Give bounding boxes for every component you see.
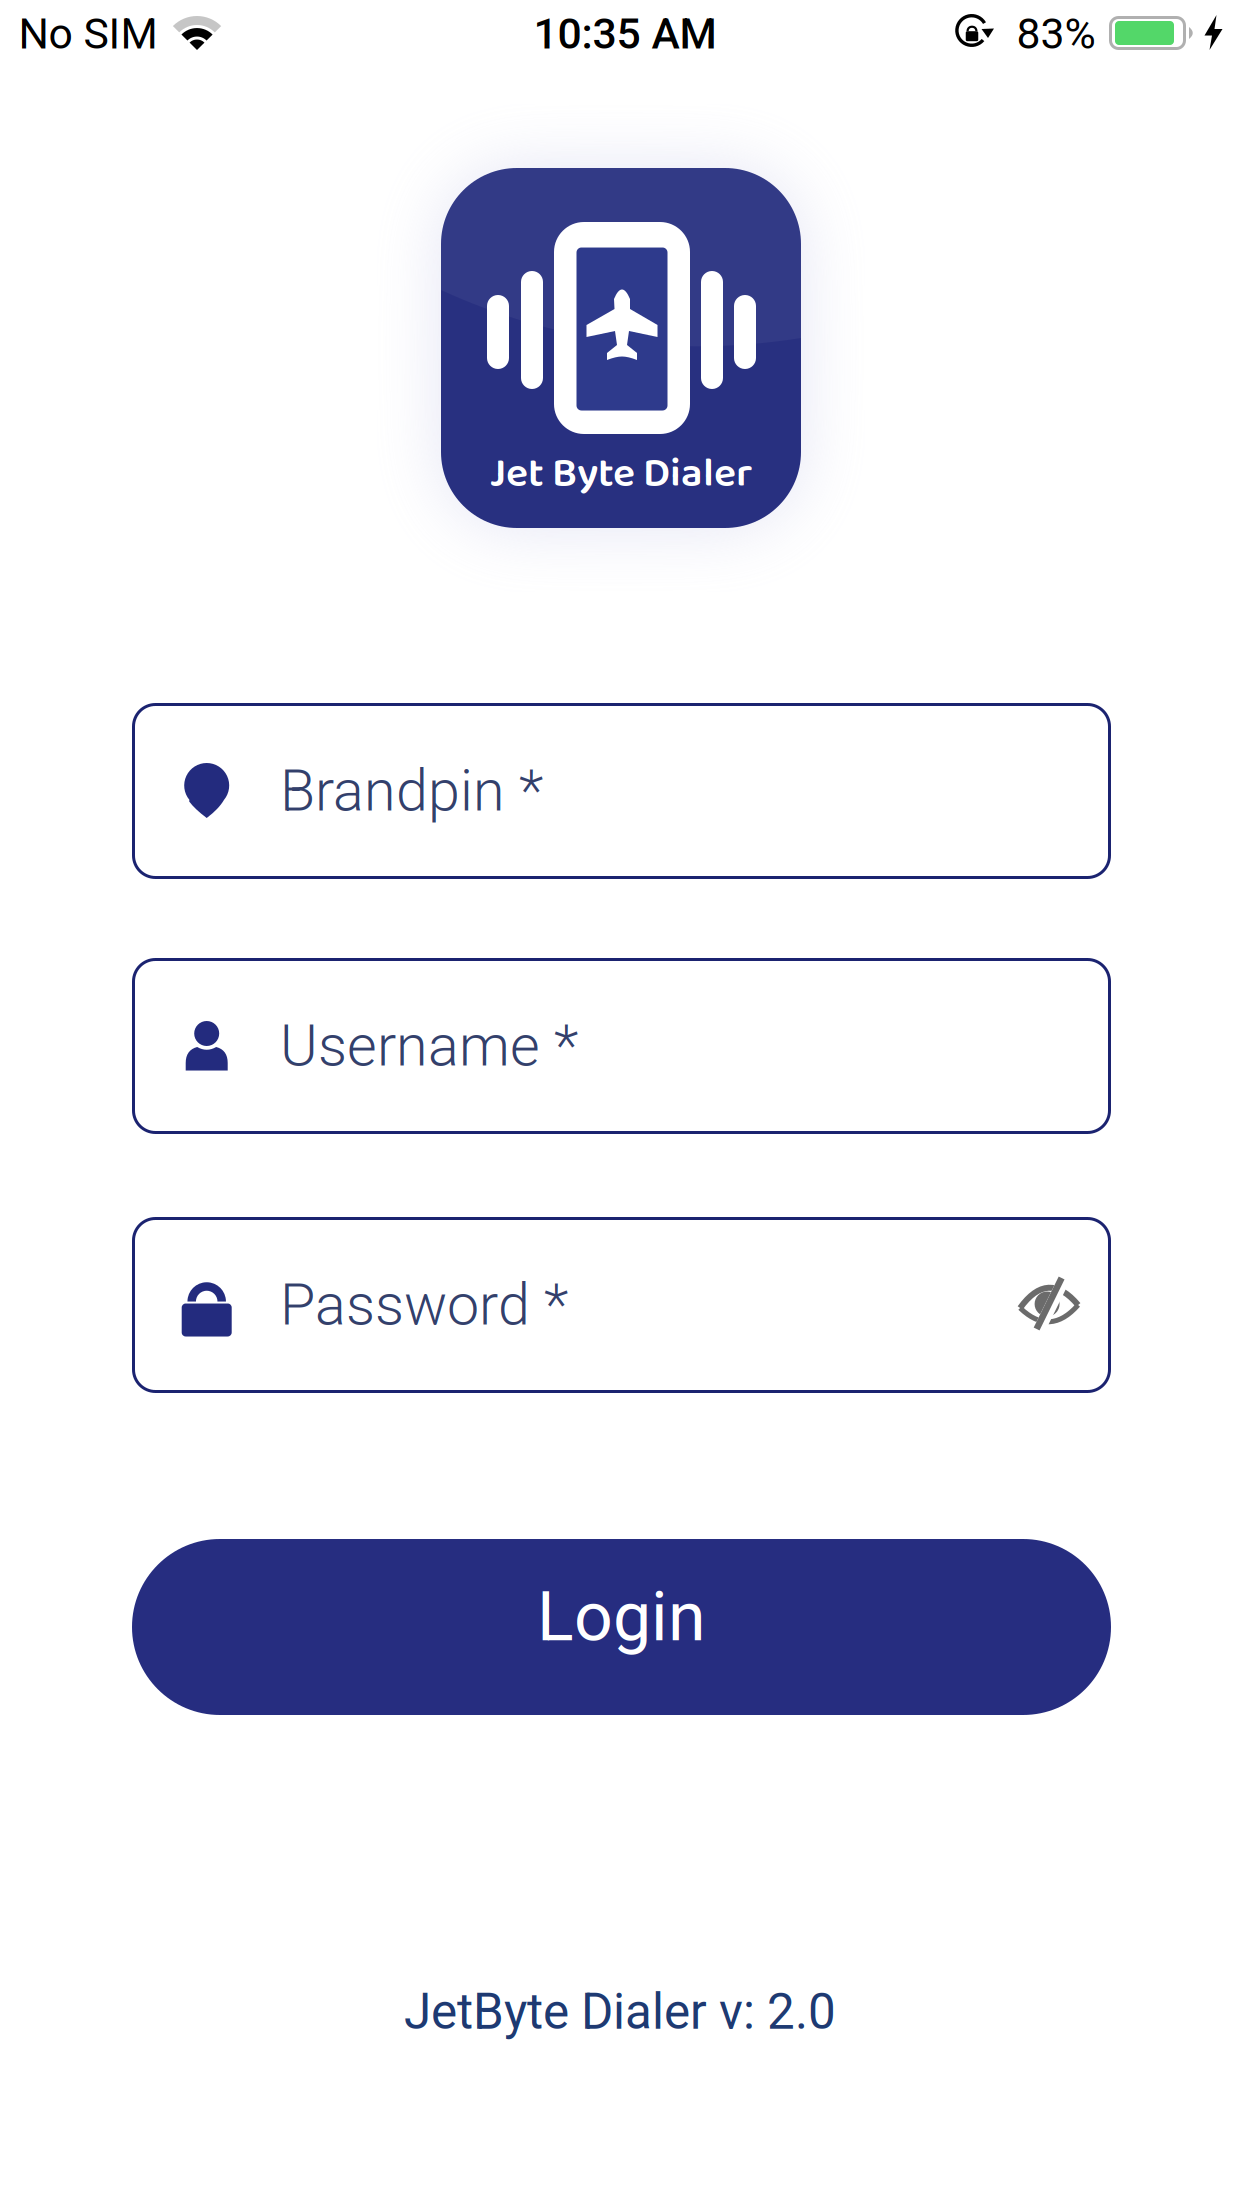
button[interactable]: Login [132,1539,1111,1715]
staticText: No SIM [18,9,157,59]
button[interactable]: Show password [1018,1279,1081,1329]
staticText: Password * [280,1271,568,1339]
staticText: Login [537,1577,706,1657]
staticText: Jet Byte Dialer [490,441,752,507]
staticText: Username * [280,1012,578,1080]
staticText: 10:35 AM [533,9,716,59]
staticText: 83% [1016,9,1095,59]
staticText: JetByte Dialer v: 2.0 [404,1983,836,2041]
staticText: Brandpin * [280,757,543,825]
